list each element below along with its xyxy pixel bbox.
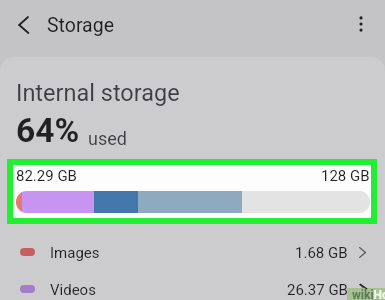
staticText: Storage (47, 14, 115, 37)
staticText: Internal storage (16, 79, 180, 107)
button[interactable]: More options (347, 10, 375, 38)
staticText: 128 GB (321, 167, 370, 185)
staticText: 1.68 GB (295, 244, 348, 262)
staticText: wikiHow (352, 288, 385, 300)
staticText: used (88, 128, 127, 149)
button[interactable]: Videos (0, 272, 385, 300)
staticText: 64% (16, 111, 80, 150)
staticText: 82.29 GB (16, 167, 77, 185)
button[interactable]: Back (8, 9, 40, 41)
staticText: Images (50, 244, 100, 262)
staticText: Videos (50, 281, 96, 299)
staticText: 26.37 GB (287, 281, 348, 299)
button[interactable]: Images (0, 235, 385, 272)
